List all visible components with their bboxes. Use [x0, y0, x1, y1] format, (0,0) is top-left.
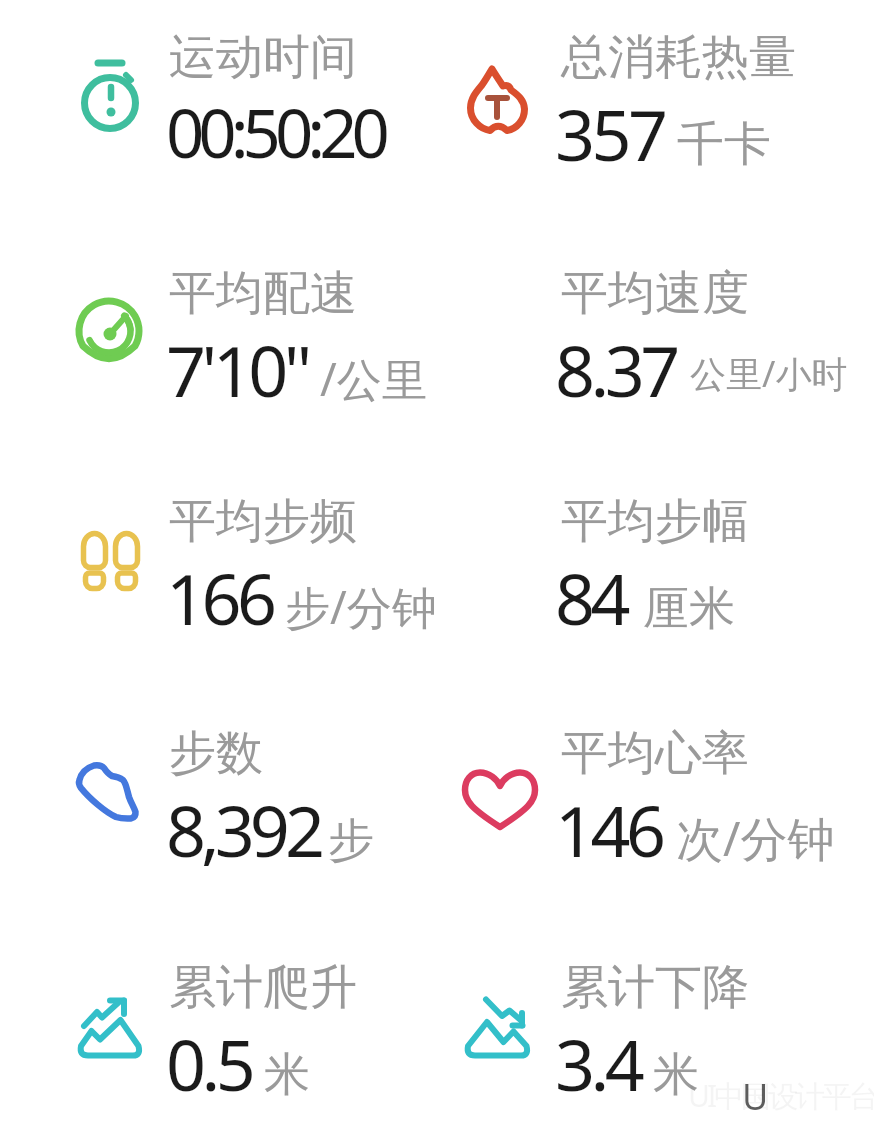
button[interactable]: 平均步频: [55, 489, 443, 639]
button[interactable]: 平均步幅: [445, 489, 873, 639]
button[interactable]: 累计爬升: [55, 955, 443, 1105]
staticText: 米: [264, 1046, 310, 1104]
staticText: 00:50:20: [166, 86, 384, 177]
staticText: 7'10": [166, 322, 308, 417]
staticText: 8.37: [555, 322, 676, 417]
staticText: 累计爬升: [169, 958, 357, 1017]
staticText: 8,392: [166, 782, 320, 877]
staticText: 166: [166, 550, 273, 645]
staticText: 84: [555, 550, 627, 645]
staticText: 357: [555, 86, 665, 181]
button[interactable]: 平均配速: [55, 261, 443, 411]
staticText: 步数: [169, 724, 263, 783]
staticText: 次/分钟: [676, 806, 835, 870]
button[interactable]: 总消耗热量: [445, 25, 873, 175]
staticText: 平均速度: [561, 264, 749, 323]
staticText: U: [742, 1072, 769, 1121]
staticText: 平均步幅: [561, 492, 749, 551]
staticText: 总消耗热量: [561, 28, 796, 87]
staticText: 平均配速: [169, 264, 357, 323]
staticText: 0.5: [166, 1016, 252, 1111]
button[interactable]: 平均心率: [445, 721, 873, 871]
staticText: 3.4: [555, 1016, 641, 1111]
staticText: 米: [653, 1046, 699, 1104]
staticText: 运动时间: [169, 28, 357, 87]
staticText: 厘米: [643, 580, 735, 638]
staticText: 平均步频: [169, 492, 357, 551]
button[interactable]: 累计下降: [445, 955, 873, 1105]
button[interactable]: 平均速度: [445, 261, 873, 411]
staticText: 平均心率: [561, 724, 749, 783]
staticText: UI中国设计平台: [688, 1075, 874, 1116]
staticText: /公里: [320, 348, 427, 409]
staticText: 步: [328, 812, 374, 870]
staticText: 步/分钟: [285, 576, 437, 637]
staticText: 累计下降: [561, 958, 749, 1017]
button[interactable]: 运动时间: [55, 25, 443, 175]
button[interactable]: 步数: [55, 721, 443, 871]
staticText: 千卡: [677, 115, 771, 174]
staticText: 146: [555, 782, 662, 877]
staticText: 公里/小时: [690, 349, 848, 398]
